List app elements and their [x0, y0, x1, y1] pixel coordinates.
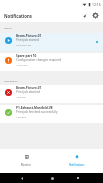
- staticText: TODAY: [4, 26, 13, 29]
- staticText: Spare part 10: [16, 54, 37, 58]
- staticText: 12:16: [92, 2, 101, 7]
- button[interactable]: Beam-Picture-01: [0, 85, 103, 103]
- staticText: Beam-Picture-01: [16, 34, 42, 38]
- button[interactable]: P1-Exhaust-Manifold-V8: [0, 105, 103, 123]
- staticText: Configuration changes required: [16, 58, 61, 62]
- staticText: Print job started: [16, 38, 39, 42]
- button[interactable]: Recents: [63, 173, 93, 183]
- staticText: 1 day ago: [16, 116, 26, 119]
- staticText: Beam-Picture-01: [16, 86, 42, 90]
- staticText: Print job finished successfully: [16, 110, 58, 114]
- staticText: a moment ago: [16, 44, 32, 47]
- staticText: 1 hour ago: [16, 64, 28, 67]
- staticText: Print job aborted: [16, 90, 40, 94]
- button[interactable]: Beam-Picture-01: [0, 33, 103, 51]
- button[interactable]: Notifications: [51, 149, 103, 173]
- staticText: 1 day ago: [16, 96, 26, 99]
- button[interactable]: Settings: [90, 9, 101, 22]
- staticText: Notifications: [4, 13, 32, 19]
- button[interactable]: Clear all: [79, 9, 90, 22]
- staticText: P1-Exhaust-Manifold-V8: [16, 106, 53, 110]
- button[interactable]: Back: [7, 173, 37, 183]
- button[interactable]: Spare part 10: [0, 53, 103, 71]
- button[interactable]: Monitor: [0, 149, 51, 173]
- staticText: Notifications: [69, 163, 85, 167]
- staticText: Monitor: [21, 163, 31, 167]
- button[interactable]: Home: [37, 173, 67, 183]
- staticText: YESTERDAY: [4, 79, 18, 82]
